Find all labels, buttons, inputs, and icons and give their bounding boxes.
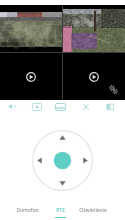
button[interactable]: Mute xyxy=(4,100,20,113)
button[interactable]: Snapshot xyxy=(29,100,45,113)
staticText: Domofon xyxy=(16,207,39,214)
button[interactable]: Record xyxy=(102,100,118,113)
button[interactable]: PTZ xyxy=(44,198,76,220)
button[interactable]: Domofon xyxy=(11,198,43,220)
button[interactable]: Play camera 4 xyxy=(63,53,125,100)
other: Settings xyxy=(109,85,118,94)
staticText: auto xyxy=(56,105,66,110)
staticText: Oświetlenie xyxy=(79,207,107,214)
staticText: PTZ xyxy=(56,207,65,214)
button[interactable] xyxy=(63,5,125,52)
button[interactable]: Oświetlenie xyxy=(77,198,109,220)
button[interactable]: Auto xyxy=(52,100,68,113)
button[interactable]: Play camera 3 xyxy=(0,53,62,100)
button[interactable] xyxy=(0,5,62,52)
button[interactable]: Cut xyxy=(78,100,94,113)
